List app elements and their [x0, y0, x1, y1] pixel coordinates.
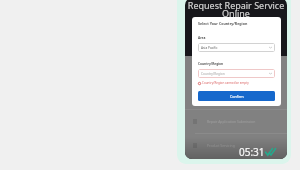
staticText: Country/Region cannot be empty: [202, 81, 249, 85]
button[interactable]: Request Repair Service Online: [177, 0, 291, 164]
staticText: Product Servicing: [207, 143, 235, 148]
staticText: Request Repair Service Online: [187, 0, 285, 19]
button[interactable]: Country/Region: [201, 69, 272, 78]
staticText: Repair Application Submission: [207, 119, 256, 124]
staticText: Area: [198, 36, 206, 40]
staticText: Country/Region: [198, 62, 224, 66]
staticText: Country/Region: [201, 72, 225, 76]
button[interactable]: Asia Pacific: [201, 43, 272, 52]
staticText: Select Your Country/Region: [198, 21, 248, 26]
button[interactable]: Product Servicing: [193, 134, 287, 157]
staticText: Confirm: [230, 94, 244, 99]
staticText: Asia Pacific: [201, 46, 218, 50]
button[interactable]: Confirm: [198, 91, 275, 101]
staticText: 05:31: [239, 145, 265, 159]
